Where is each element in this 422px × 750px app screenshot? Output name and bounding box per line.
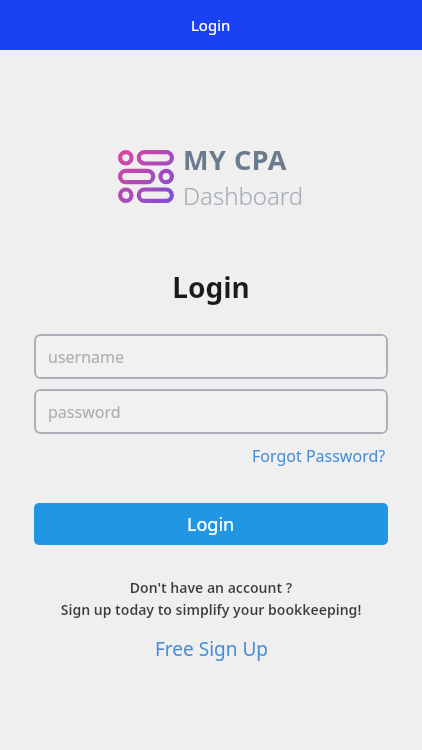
button[interactable]: Free Sign Up: [147, 632, 276, 666]
staticText: Login: [187, 512, 235, 537]
staticText: Free Sign Up: [155, 636, 268, 662]
staticText: Login: [191, 15, 231, 35]
staticText: Don't have an account ?: [0, 578, 422, 597]
staticText: Login: [0, 268, 422, 306]
button[interactable]: password: [34, 389, 388, 434]
staticText: MY CPA: [183, 141, 287, 178]
staticText: Sign up today to simplify your bookkeepi…: [0, 600, 422, 619]
button[interactable]: Login: [34, 503, 388, 545]
other: MY CPA Dashboard logo: [118, 150, 174, 203]
staticText: username: [48, 346, 125, 368]
staticText: Forgot Password?: [252, 445, 386, 467]
button[interactable]: Forgot Password?: [250, 442, 388, 470]
button[interactable]: username: [34, 334, 388, 379]
staticText: password: [48, 401, 121, 423]
staticText: Dashboard: [183, 179, 304, 212]
